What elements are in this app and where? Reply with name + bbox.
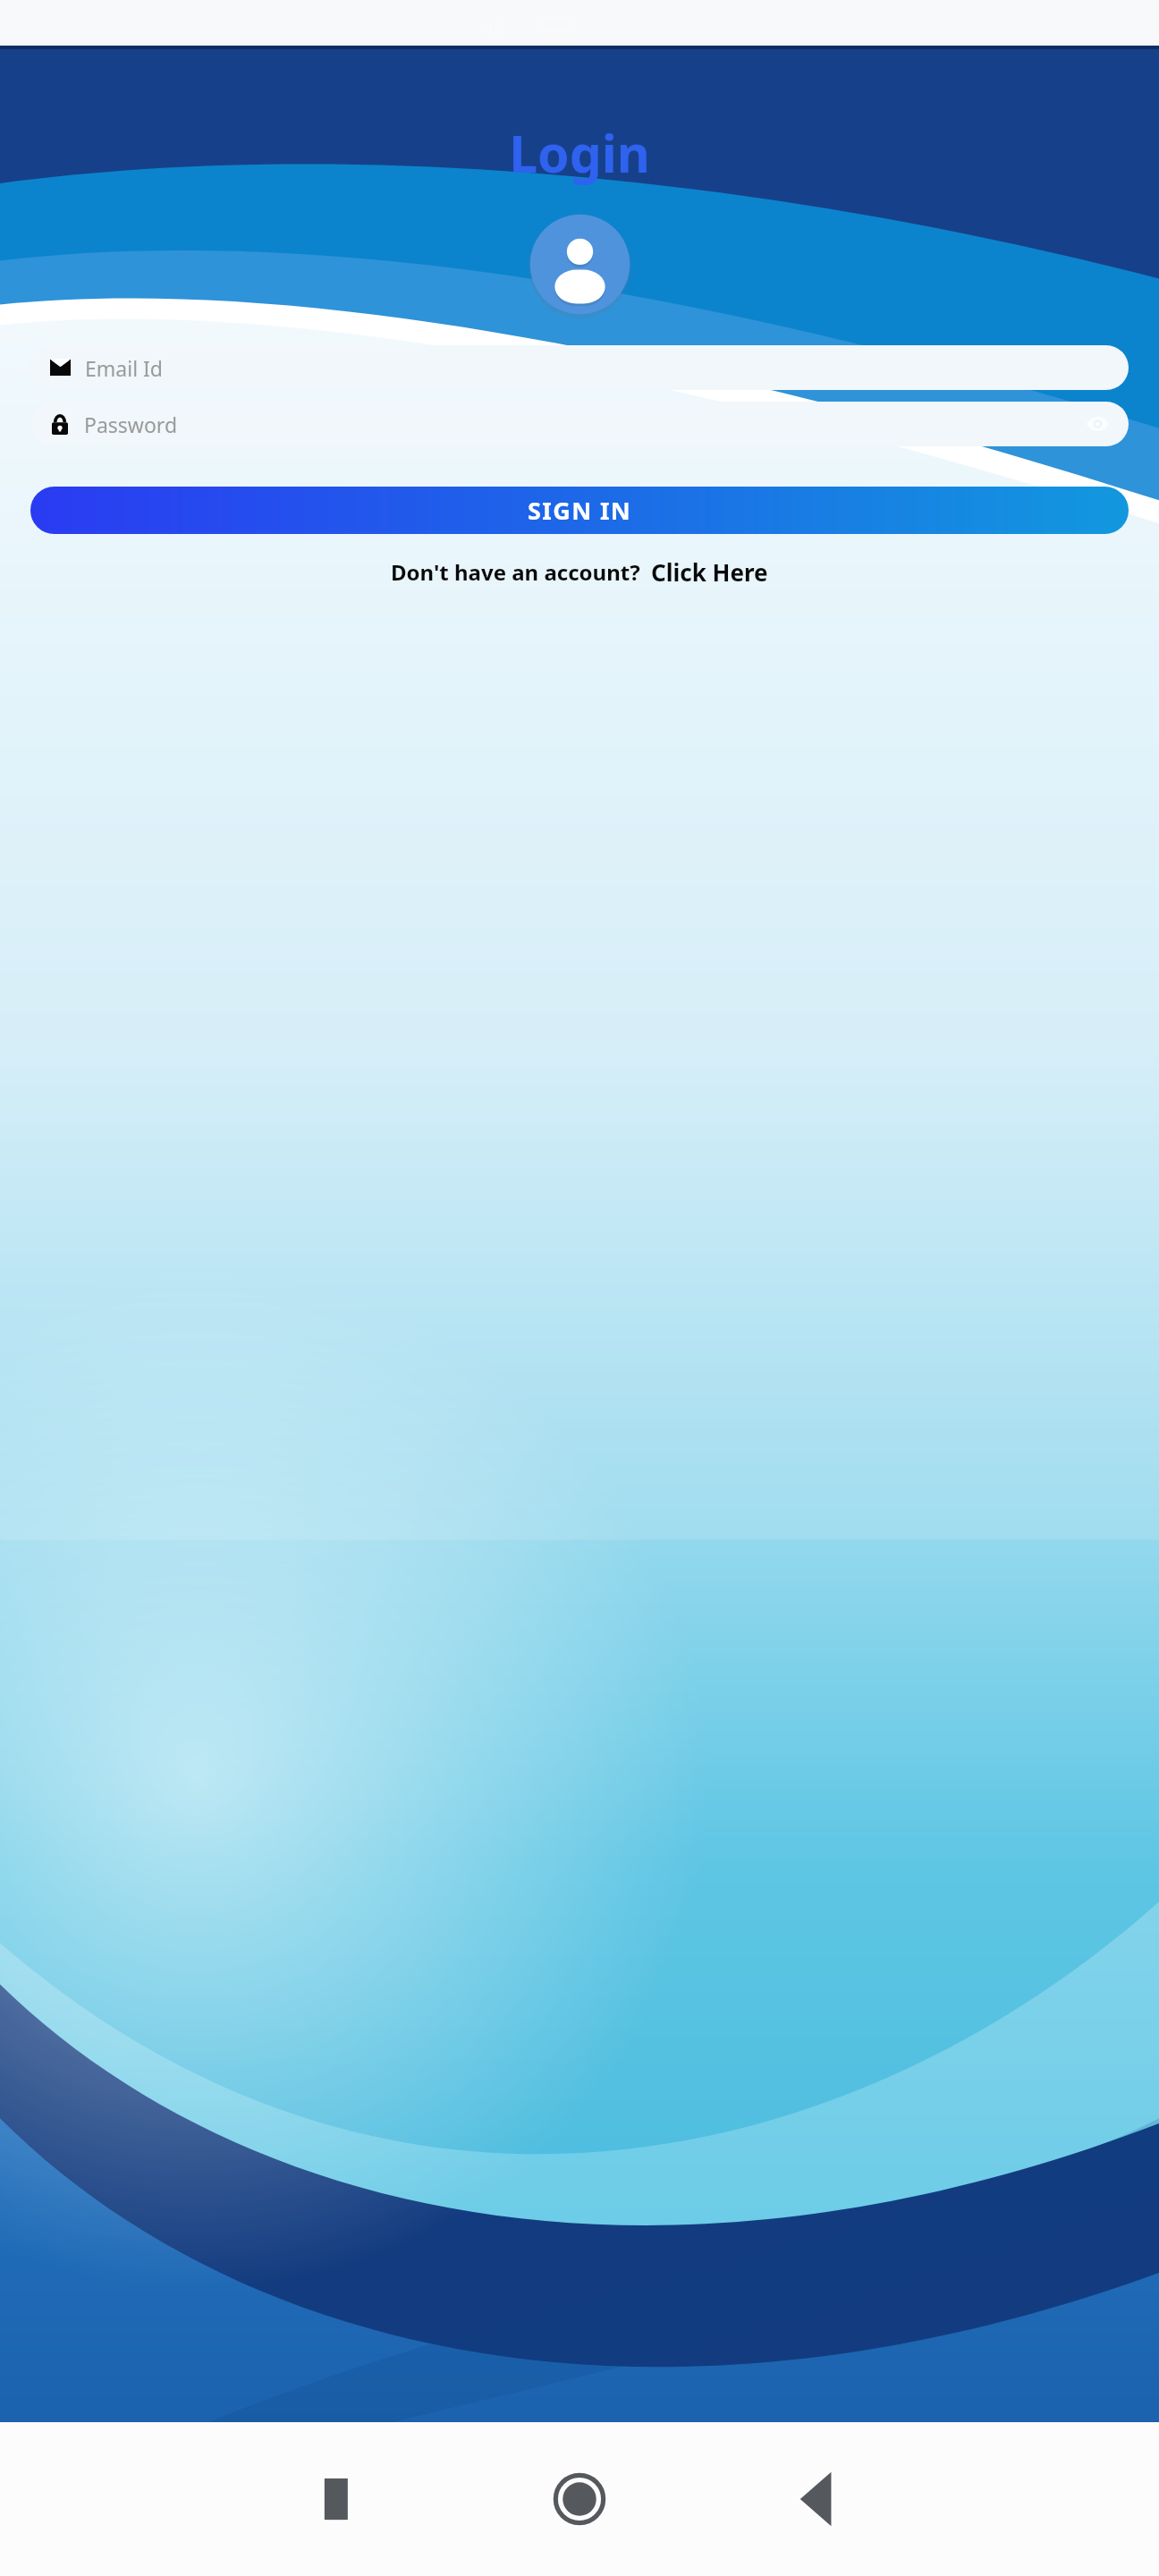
staticText: Password (84, 411, 1082, 438)
button[interactable]: Click Here (651, 556, 768, 588)
staticText: Login (0, 118, 1159, 188)
button[interactable]: Password (30, 402, 1129, 446)
button[interactable]: Show password (1082, 409, 1112, 439)
button[interactable]: Email Id (30, 345, 1129, 390)
staticText: Email Id (85, 354, 163, 382)
button[interactable]: SIGN IN (30, 487, 1129, 534)
button[interactable]: Don't have an account? (391, 557, 640, 587)
staticText: SIGN IN (528, 494, 632, 527)
